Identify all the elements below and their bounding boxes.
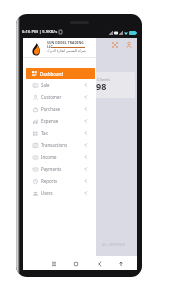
staticText: Customer xyxy=(41,94,62,100)
staticText: Total Clients xyxy=(87,77,110,82)
staticText: Income xyxy=(41,154,57,160)
button[interactable]: Payments xyxy=(23,163,96,175)
staticText: Sale xyxy=(41,82,50,88)
staticText: Expense xyxy=(41,118,59,124)
staticText: Dashboard xyxy=(40,71,64,77)
button[interactable]: Dashboard xyxy=(26,68,95,79)
button[interactable]: Home xyxy=(74,262,78,266)
button[interactable]: Users xyxy=(23,187,96,199)
button[interactable]: Total Clients xyxy=(63,72,135,98)
staticText: SUN DIESEL TRADING xyxy=(47,40,84,44)
staticText: Reports xyxy=(41,178,58,184)
button[interactable]: Keyboard xyxy=(119,262,123,266)
staticText: ALL MONTHS xyxy=(102,242,125,247)
button[interactable]: Sale xyxy=(23,79,96,91)
button[interactable]: Income xyxy=(23,151,96,163)
staticText: Transactions xyxy=(41,142,67,148)
button[interactable]: Customer xyxy=(23,91,96,103)
staticText: Purchase xyxy=(41,106,60,112)
button[interactable]: Purchase xyxy=(23,103,96,115)
staticText: Users xyxy=(41,190,53,196)
button[interactable]: Reports xyxy=(23,175,96,187)
button[interactable]: Fullscreen xyxy=(109,39,120,50)
button[interactable]: Recents xyxy=(52,262,56,266)
button[interactable]: Tax xyxy=(23,127,96,139)
staticText: 98 xyxy=(96,80,107,92)
button[interactable]: Back xyxy=(98,262,102,266)
staticText: شركة الشمس لتجارة الديزل xyxy=(47,48,86,52)
button[interactable]: Account xyxy=(123,39,134,50)
button[interactable]: SUN DIESEL TRADING xyxy=(23,38,96,57)
button[interactable]: Expense xyxy=(23,115,96,127)
button[interactable]: Transactions xyxy=(23,139,96,151)
staticText: 6:16 PM | 5.9KB/s xyxy=(22,29,58,35)
staticText: Tax xyxy=(41,130,48,136)
staticText: Payments xyxy=(41,166,62,172)
staticText: LLC xyxy=(47,44,53,48)
